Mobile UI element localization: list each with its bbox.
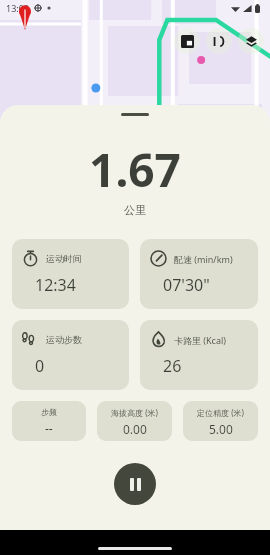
staticText: 步频	[41, 407, 57, 417]
button[interactable]: Pause workout	[114, 463, 156, 505]
button[interactable]: 卡路里 (Kcal)	[140, 320, 258, 390]
staticText: 1.67	[89, 138, 181, 201]
button[interactable]: 3D view	[206, 28, 232, 54]
staticText: 13:00	[6, 2, 30, 14]
button[interactable]: 运动时间	[12, 239, 129, 309]
button[interactable]: 定位精度 (米)	[183, 401, 258, 441]
staticText: --	[45, 420, 53, 436]
staticText: 定位精度 (米)	[197, 407, 244, 418]
staticText: 海拔高度 (米)	[111, 407, 158, 418]
staticText: 运动步数	[46, 334, 82, 345]
staticText: 0.00	[123, 421, 147, 437]
staticText: 07'30"	[163, 274, 210, 296]
staticText: 运动时间	[46, 253, 82, 264]
staticText: 12:34	[35, 274, 76, 296]
button[interactable]: 海拔高度 (米)	[97, 401, 172, 441]
button[interactable]: Layers	[238, 28, 264, 54]
staticText: 配速 (min/km)	[174, 253, 233, 265]
button[interactable]	[121, 113, 149, 116]
button[interactable]: 运动步数	[12, 320, 129, 390]
button[interactable]: 配速 (min/km)	[140, 239, 258, 309]
staticText: 0	[35, 355, 45, 377]
staticText: 卡路里 (Kcal)	[174, 334, 227, 346]
staticText: 公里	[124, 203, 146, 217]
button[interactable]: Map layers preview	[174, 28, 200, 54]
staticText: 26	[163, 355, 182, 377]
button[interactable]: 步频	[12, 401, 86, 441]
staticText: 5.00	[209, 421, 233, 437]
